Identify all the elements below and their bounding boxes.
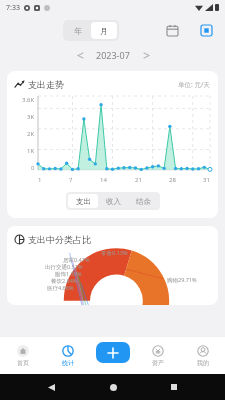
staticText: 支出走势: [28, 79, 64, 90]
staticText: 21: [135, 176, 142, 184]
staticText: 1: [38, 176, 42, 184]
button[interactable]: Recents: [164, 377, 184, 397]
staticText: 1K: [27, 147, 35, 155]
button[interactable]: 月: [91, 22, 117, 39]
button[interactable]: 收入: [98, 194, 128, 208]
staticText: 资产: [152, 359, 164, 367]
staticText: 月: [100, 26, 108, 36]
staticText: 服饰1.39%: [55, 270, 82, 278]
staticText: 出行交通0.51%: [45, 263, 83, 271]
button[interactable]: Add record: [96, 342, 130, 363]
staticText: 0: [31, 164, 35, 172]
staticText: 餐饮2.84%: [51, 277, 78, 285]
staticText: 统计: [62, 359, 74, 367]
staticText: 我的: [197, 359, 209, 367]
button[interactable]: Home: [103, 377, 123, 397]
staticText: 医疗4.66%: [47, 284, 74, 292]
button[interactable]: 结余: [128, 194, 158, 208]
button[interactable]: 资产: [135, 337, 180, 374]
staticText: 居家0.47%: [63, 256, 90, 264]
staticText: 收入: [106, 197, 121, 206]
staticText: 28: [169, 176, 176, 184]
staticText: 年: [74, 26, 82, 36]
staticText: 14: [100, 176, 107, 184]
staticText: 7: [69, 176, 73, 184]
button[interactable]: Calendar: [163, 21, 181, 39]
staticText: 单位: 元/天: [178, 80, 210, 89]
button[interactable]: Back: [41, 377, 61, 397]
staticText: 2023-07: [96, 49, 130, 61]
button[interactable]: 支出: [68, 194, 98, 208]
button[interactable]: 统计: [45, 337, 90, 374]
staticText: 3.6K: [22, 96, 35, 104]
staticText: 3K: [27, 113, 35, 121]
staticText: 31: [203, 176, 210, 184]
button[interactable]: Previous month: [72, 47, 88, 63]
staticText: 2K: [27, 130, 35, 138]
staticText: 7:33: [6, 3, 20, 13]
button[interactable]: Chart type: [197, 21, 215, 39]
staticText: 支出: [76, 197, 91, 206]
staticText: 零食0.13%: [101, 249, 128, 257]
button[interactable]: 我的: [180, 337, 225, 374]
button[interactable]: Next month: [138, 47, 154, 63]
staticText: 首页: [17, 359, 29, 367]
button[interactable]: 年: [65, 22, 91, 39]
button[interactable]: 首页: [0, 337, 45, 374]
staticText: 购物29.71%: [167, 276, 197, 284]
staticText: 结余: [136, 197, 151, 206]
staticText: 支出中分类占比: [28, 234, 91, 245]
